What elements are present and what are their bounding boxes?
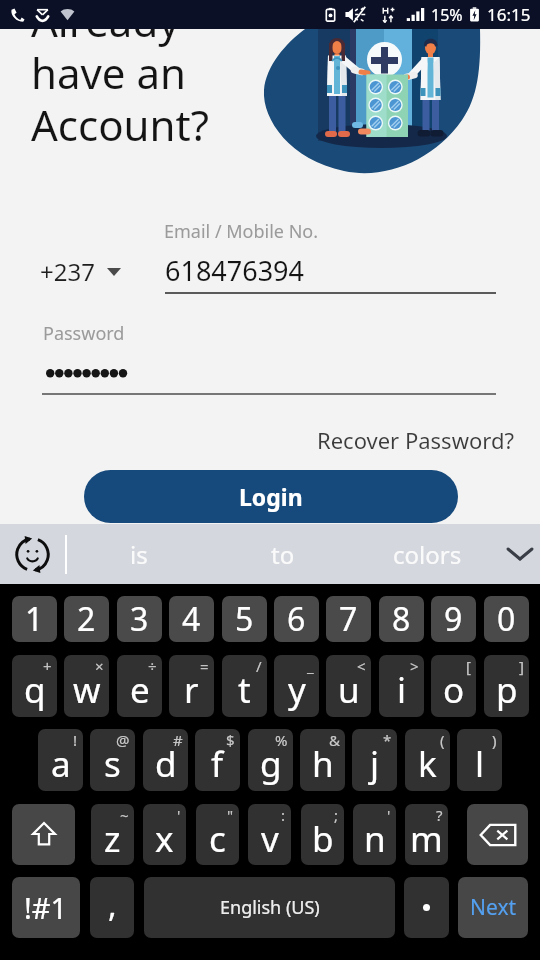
button[interactable]: × <box>64 655 109 717</box>
staticText: * <box>383 730 392 750</box>
staticText: _ <box>307 656 314 676</box>
staticText: e <box>130 666 150 714</box>
staticText: h <box>312 740 334 788</box>
staticText: p <box>496 666 518 714</box>
button[interactable]: & <box>300 729 345 791</box>
button[interactable]: ' <box>143 804 186 865</box>
button[interactable]: 4 <box>169 596 214 642</box>
button[interactable]: < <box>326 655 371 717</box>
staticText: n <box>364 815 386 863</box>
staticText: c <box>209 815 226 863</box>
button[interactable]: _ <box>274 655 319 717</box>
staticText: ÷ <box>148 656 157 676</box>
button[interactable]: ? <box>405 804 448 865</box>
staticText: 6 <box>287 597 306 641</box>
button[interactable]: English (US) <box>144 877 395 938</box>
button[interactable]: , <box>90 877 134 938</box>
staticText: ] <box>519 656 524 676</box>
button[interactable]: 6 <box>274 596 319 642</box>
staticText: k <box>418 740 437 788</box>
staticText: y <box>288 666 306 714</box>
button[interactable]: 9 <box>431 596 476 642</box>
staticText: , <box>108 883 117 927</box>
staticText: = <box>200 656 209 676</box>
button[interactable]: Expand suggestions <box>499 524 540 584</box>
button[interactable]: ] <box>484 655 529 717</box>
staticText: a <box>51 740 71 788</box>
staticText: > <box>410 656 419 676</box>
button[interactable]: 3 <box>117 596 162 642</box>
button[interactable]: ~ <box>91 804 134 865</box>
staticText: " <box>227 805 234 825</box>
staticText: colors <box>393 538 462 571</box>
button[interactable]: 7 <box>326 596 371 642</box>
staticText: ! <box>73 730 78 750</box>
staticText: 5 <box>235 597 254 641</box>
staticText: ; <box>334 805 339 825</box>
staticText: q <box>24 666 46 714</box>
button[interactable]: !#1 <box>12 877 80 938</box>
button[interactable] <box>467 804 528 865</box>
staticText: l <box>475 740 485 788</box>
staticText: r <box>184 666 199 714</box>
button[interactable]: Emoji <box>0 524 65 584</box>
staticText: t <box>238 666 251 714</box>
staticText: u <box>338 666 360 714</box>
button[interactable]: ( <box>405 729 450 791</box>
staticText: s <box>104 740 121 788</box>
staticText: Password <box>43 321 125 346</box>
button[interactable]: ) <box>457 729 502 791</box>
button[interactable]: 5 <box>222 596 267 642</box>
staticText: f <box>211 740 224 788</box>
button[interactable]: ' <box>353 804 396 865</box>
button[interactable]: @ <box>90 729 135 791</box>
staticText: 618476394 <box>165 252 304 289</box>
button[interactable]: +237 <box>40 255 121 288</box>
staticText: Already have an Account? <box>31 0 209 153</box>
button[interactable]: # <box>143 729 188 791</box>
staticText: w <box>73 666 101 714</box>
button[interactable]: = <box>169 655 214 717</box>
button[interactable]: > <box>379 655 424 717</box>
staticText: / <box>256 656 262 676</box>
button[interactable]: Next <box>458 877 528 938</box>
staticText: × <box>95 656 104 676</box>
button[interactable]: ; <box>301 804 344 865</box>
staticText: ? <box>436 805 443 825</box>
staticText: !#1 <box>24 888 68 927</box>
button[interactable]: ÷ <box>117 655 162 717</box>
staticText: v <box>261 815 279 863</box>
button[interactable] <box>404 877 449 938</box>
staticText: 1 <box>25 597 44 641</box>
button[interactable]: Login <box>84 470 458 523</box>
button[interactable]: 8 <box>379 596 424 642</box>
button[interactable]: colors <box>355 524 499 584</box>
staticText: 4 <box>182 597 201 641</box>
button[interactable]: * <box>352 729 397 791</box>
staticText: i <box>397 666 407 714</box>
button[interactable]: [ <box>431 655 476 717</box>
button[interactable]: 2 <box>64 596 109 642</box>
button[interactable]: + <box>12 655 57 717</box>
button[interactable]: Recover Password? <box>317 425 514 455</box>
staticText: 8 <box>392 597 411 641</box>
button[interactable]: " <box>196 804 239 865</box>
staticText: Email / Mobile No. <box>164 219 319 244</box>
button[interactable]: is <box>67 524 211 584</box>
staticText: b <box>312 815 334 863</box>
button[interactable]: $ <box>195 729 240 791</box>
staticText: English (US) <box>220 895 320 920</box>
button[interactable]: 0 <box>484 596 529 642</box>
staticText: 3 <box>130 597 149 641</box>
button[interactable]: to <box>211 524 355 584</box>
staticText: is <box>130 538 148 571</box>
button[interactable]: % <box>248 729 293 791</box>
button[interactable]: / <box>222 655 267 717</box>
staticText: Login <box>239 481 303 512</box>
button[interactable]: 1 <box>12 596 57 642</box>
button[interactable] <box>12 804 75 865</box>
button[interactable]: ! <box>38 729 83 791</box>
staticText: o <box>443 666 465 714</box>
button[interactable]: : <box>248 804 291 865</box>
staticText: + <box>43 656 52 676</box>
